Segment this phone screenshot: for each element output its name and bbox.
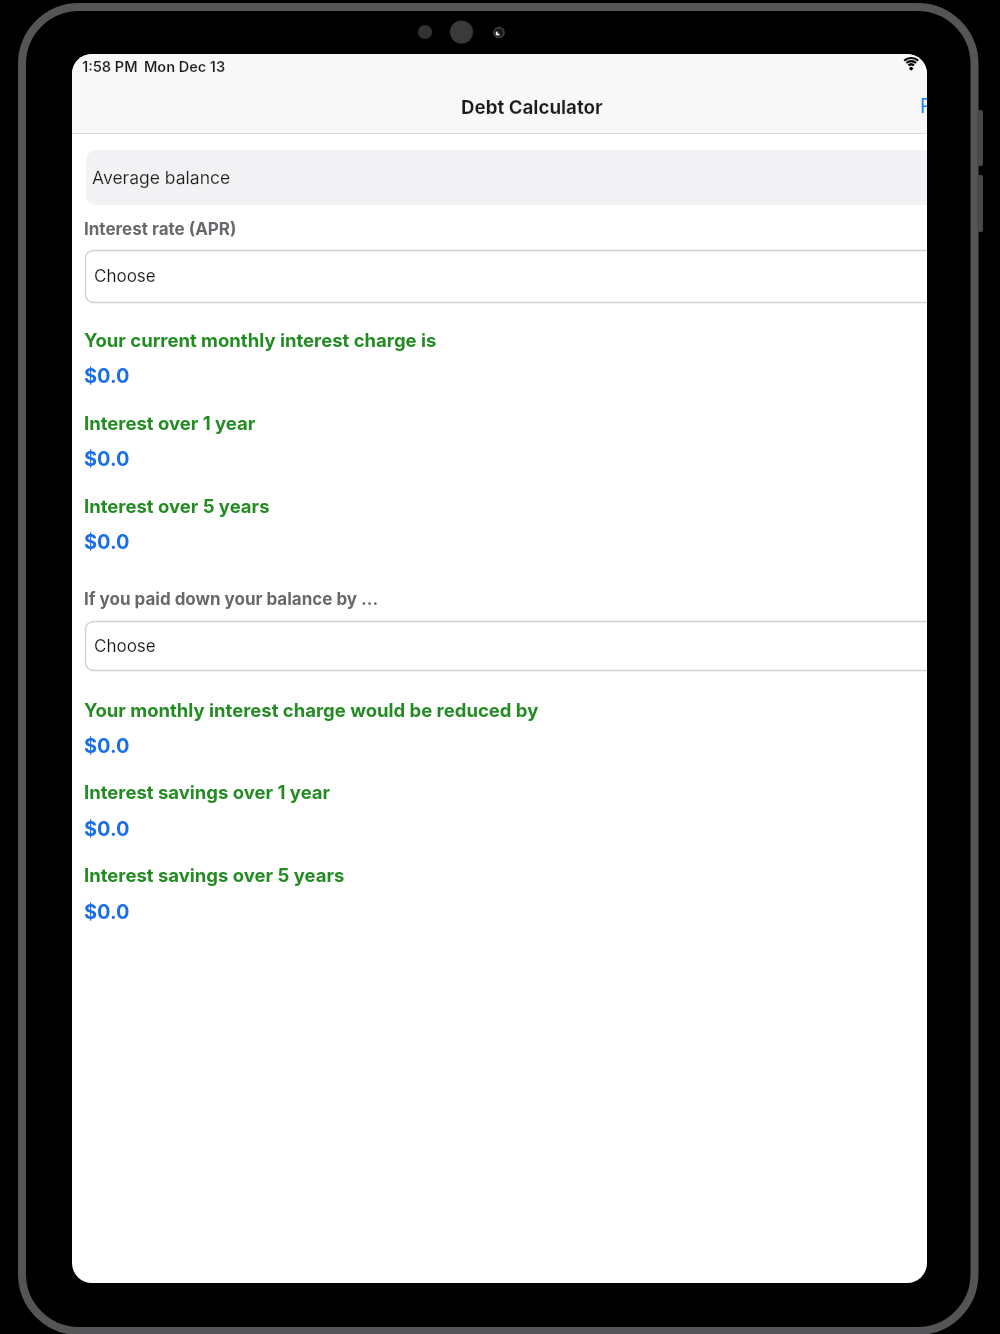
staticText: Your monthly interest charge would be re…	[84, 699, 539, 721]
button[interactable]: Average balance	[86, 150, 927, 205]
staticText: Choose	[94, 266, 156, 287]
staticText: R	[920, 94, 927, 118]
staticText: $0.0	[84, 447, 130, 471]
staticText: Interest rate (APR)	[84, 219, 237, 240]
staticText: $0.0	[84, 734, 130, 758]
staticText: Your current monthly interest charge is	[84, 329, 437, 351]
button[interactable]: Choose	[85, 250, 927, 303]
staticText: $0.0	[84, 364, 130, 388]
staticText: If you paid down your balance by ...	[84, 589, 379, 610]
staticText: Interest savings over 1 year	[84, 781, 331, 803]
staticText: Debt Calculator	[461, 96, 603, 119]
staticText: Average balance	[92, 167, 231, 188]
staticText: $0.0	[84, 900, 130, 924]
staticText: Interest savings over 5 years	[84, 864, 345, 886]
staticText: 1:58 PM	[82, 58, 138, 76]
staticText: $0.0	[84, 530, 130, 554]
staticText: $0.0	[84, 817, 130, 841]
staticText: Interest over 5 years	[84, 495, 270, 517]
staticText: Mon Dec 13	[144, 58, 226, 76]
button[interactable]: Choose	[85, 621, 927, 671]
button[interactable]: R	[920, 92, 927, 120]
staticText: Choose	[94, 636, 156, 657]
staticText: Interest over 1 year	[84, 412, 256, 434]
